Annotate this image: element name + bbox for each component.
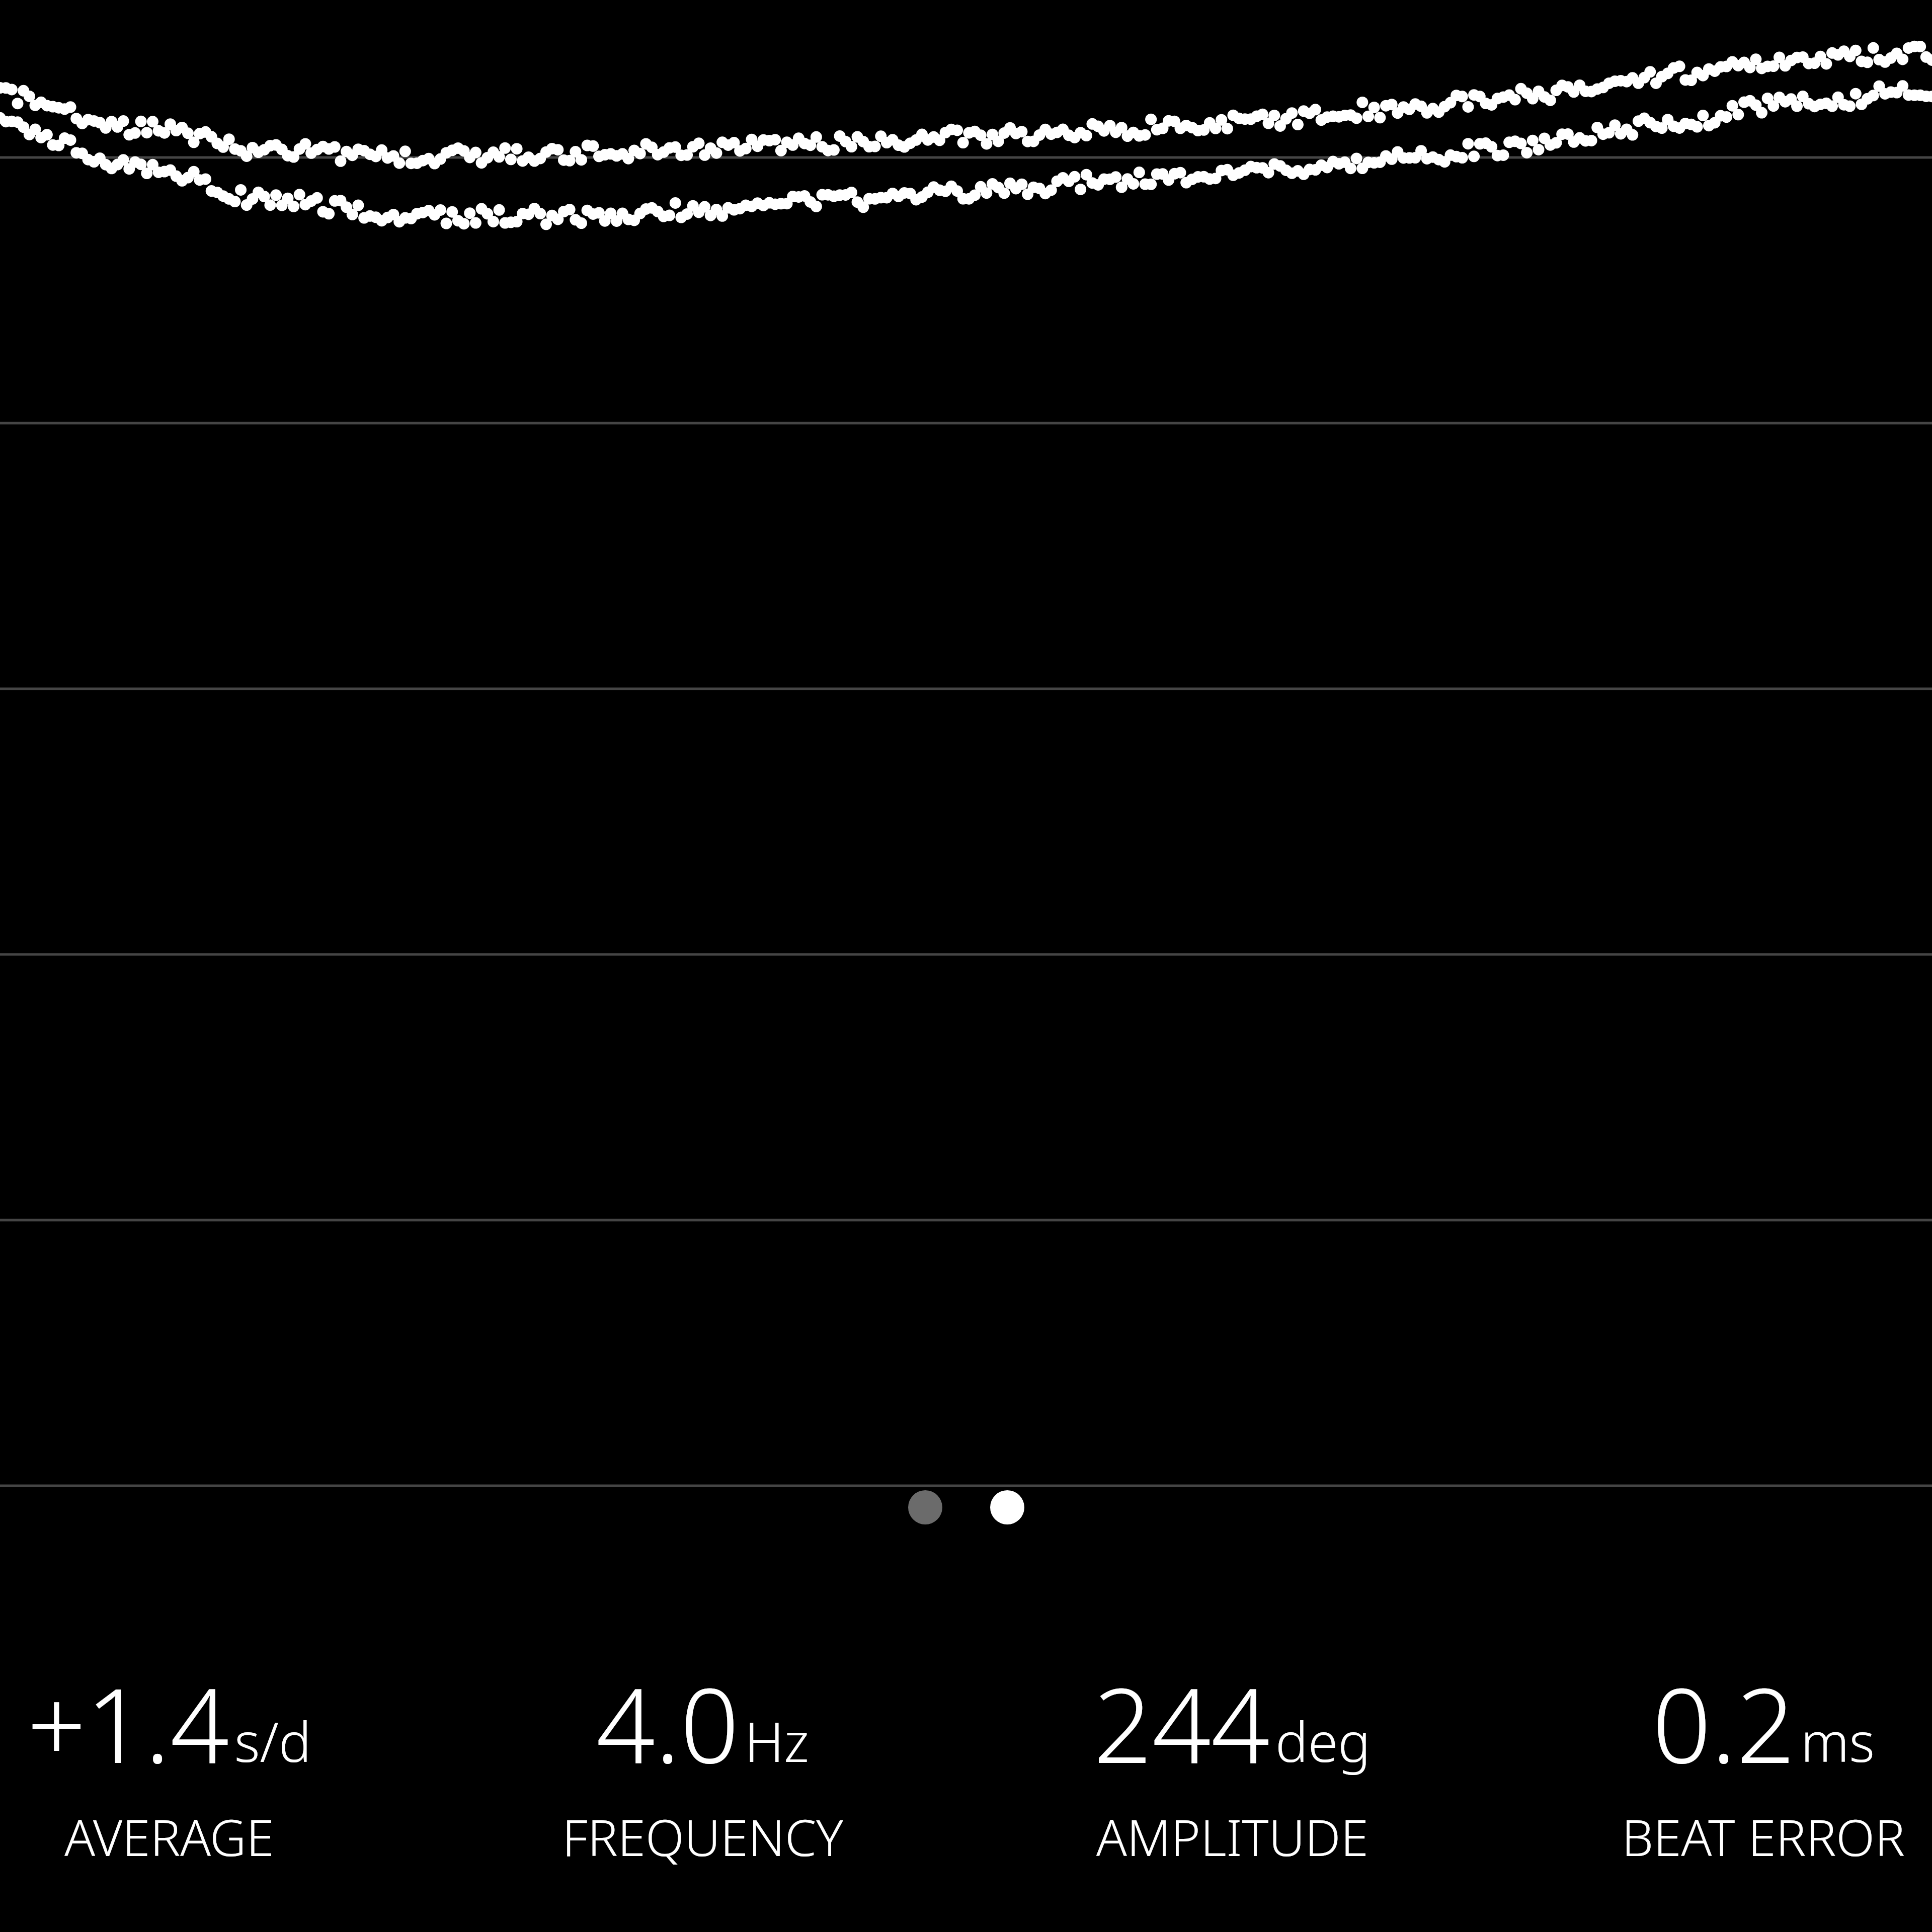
button[interactable]: 244	[1086, 1653, 1378, 1871]
staticText: 0.2	[1652, 1653, 1796, 1793]
staticText: BEAT ERROR	[1622, 1802, 1905, 1871]
button[interactable]: 0.2	[1615, 1653, 1912, 1871]
button[interactable]: Timing trace graph	[0, 0, 1932, 1487]
staticText: ms	[1801, 1704, 1875, 1778]
button[interactable]: Page 2 of 2	[908, 1490, 1024, 1524]
staticText: s/d	[234, 1704, 311, 1778]
staticText: +1.4	[27, 1653, 229, 1793]
button[interactable]: 4.0	[555, 1653, 850, 1871]
button[interactable]: +1.4	[20, 1653, 318, 1871]
staticText: FREQUENCY	[562, 1802, 843, 1871]
staticText: deg	[1275, 1704, 1371, 1778]
staticText: Hz	[745, 1704, 810, 1778]
staticText: 244	[1093, 1653, 1270, 1793]
staticText: AVERAGE	[64, 1802, 274, 1871]
staticText: 4.0	[596, 1653, 740, 1793]
staticText: AMPLITUDE	[1096, 1802, 1369, 1871]
